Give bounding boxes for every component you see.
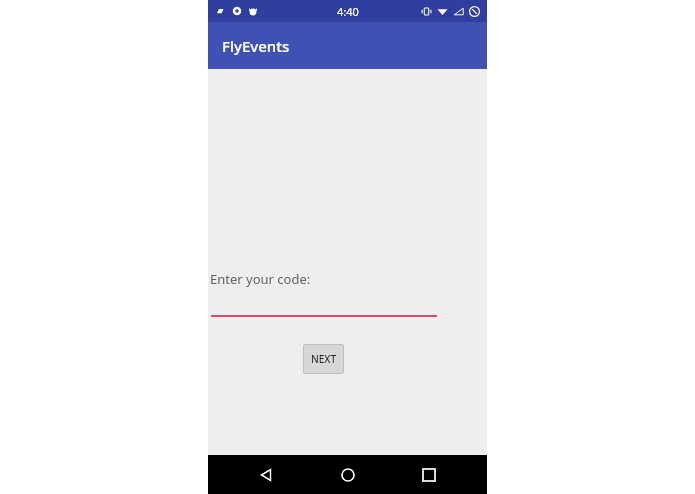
button[interactable]: Home	[324, 455, 372, 494]
staticText: Enter your code:	[210, 270, 311, 288]
button[interactable]: Recent apps	[405, 455, 453, 494]
staticText: 4:40	[337, 4, 359, 19]
button[interactable]	[211, 291, 437, 317]
button[interactable]: NEXT	[303, 344, 344, 374]
button[interactable]: Back	[242, 455, 290, 494]
staticText: FlyEvents	[222, 36, 290, 56]
staticText: NEXT	[311, 352, 337, 366]
